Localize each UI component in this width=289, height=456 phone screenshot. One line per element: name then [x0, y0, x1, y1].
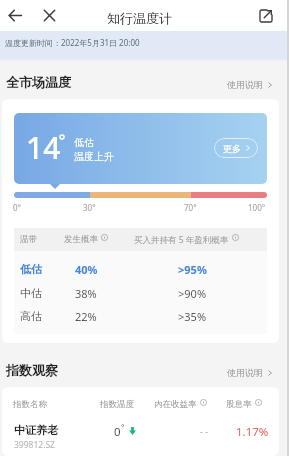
button[interactable]: Open in browser [256, 6, 276, 26]
staticText: 低估 [74, 136, 94, 149]
staticText: 低估 [20, 262, 42, 276]
staticText: 70° [184, 202, 197, 213]
staticText: >95% [178, 262, 207, 277]
button[interactable]: 使用说明 [224, 364, 276, 381]
staticText: 温带 [20, 234, 37, 245]
staticText: 399812.SZ [14, 439, 55, 451]
staticText: 100° [248, 202, 266, 213]
staticText: >35% [178, 309, 207, 324]
staticText: 温度上升 [74, 150, 114, 163]
staticText: 14 [26, 127, 61, 168]
staticText: >90% [178, 286, 207, 301]
staticText: 38% [75, 286, 97, 301]
staticText: 0 [114, 424, 121, 440]
staticText: 40% [75, 262, 98, 277]
button[interactable]: 中证养老 [4, 417, 277, 456]
button[interactable]: 更多 [214, 138, 258, 158]
staticText: 22% [75, 309, 97, 324]
staticText: 30° [83, 202, 96, 213]
staticText: 指数温度 [100, 399, 134, 410]
staticText: 使用说明 [227, 367, 263, 378]
staticText: 指数名称 [13, 399, 47, 410]
staticText: 买入并持有 5 年盈利概率 [134, 234, 229, 246]
staticText: 高估 [20, 309, 42, 323]
staticText: - - [200, 425, 209, 437]
staticText: 全市场温度 [6, 74, 71, 90]
staticText: 知行温度计 [107, 10, 172, 26]
button[interactable]: Back [6, 6, 25, 25]
staticText: 发生概率 [64, 234, 98, 245]
staticText: 温度更新时间：2022年5月31日 20:00 [5, 37, 140, 48]
button[interactable]: 使用说明 [224, 76, 276, 93]
staticText: 0° [13, 202, 21, 213]
button[interactable]: Close [40, 6, 59, 25]
staticText: 中估 [20, 286, 42, 300]
staticText: 内在收益率 [154, 399, 197, 410]
staticText: 指数观察 [6, 362, 58, 378]
staticText: 使用说明 [227, 79, 263, 90]
staticText: ° [121, 422, 125, 433]
staticText: 中证养老 [14, 423, 58, 437]
staticText: 更多 [223, 143, 241, 154]
staticText: 股息率 [226, 399, 252, 410]
staticText: 1.17% [236, 424, 269, 440]
